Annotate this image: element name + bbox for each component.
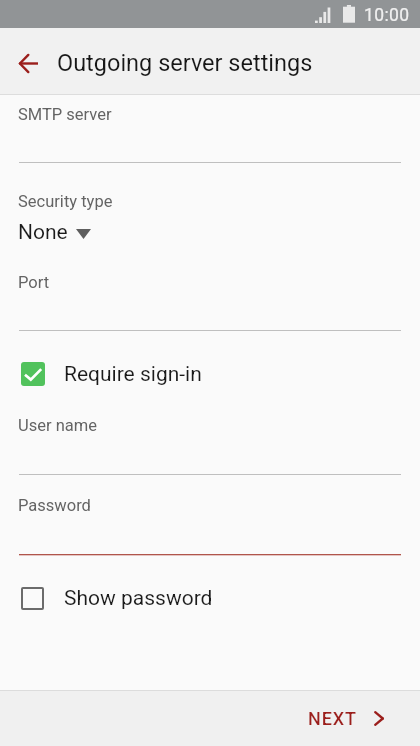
- staticText: Password: [18, 496, 91, 515]
- button[interactable]: [0, 100, 420, 163]
- button[interactable]: Show password: [0, 580, 420, 616]
- staticText: User name: [18, 416, 97, 435]
- staticText: NEXT: [308, 708, 357, 729]
- staticText: Require sign-in: [64, 362, 202, 387]
- button[interactable]: [0, 491, 420, 556]
- staticText: Outgoing server settings: [57, 49, 313, 77]
- staticText: Show password: [64, 586, 213, 611]
- staticText: Security type: [18, 192, 113, 211]
- button[interactable]: Back: [8, 43, 48, 83]
- button[interactable]: NEXT: [292, 696, 420, 741]
- staticText: SMTP server: [18, 105, 112, 124]
- button[interactable]: [0, 268, 420, 331]
- staticText: None: [18, 220, 68, 245]
- staticText: Port: [18, 273, 50, 292]
- button[interactable]: None: [0, 220, 420, 246]
- staticText: 10:00: [364, 5, 410, 26]
- button[interactable]: [0, 412, 420, 475]
- button[interactable]: Require sign-in: [0, 356, 420, 392]
